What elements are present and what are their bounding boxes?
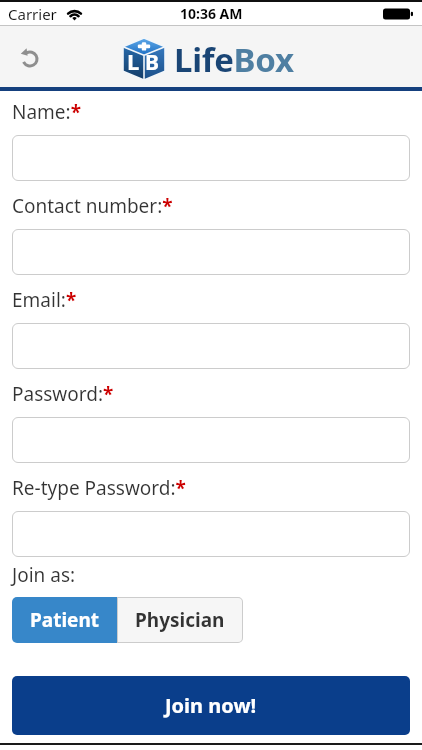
button[interactable]: Physician — [117, 597, 243, 643]
button[interactable]: Patient — [12, 597, 117, 643]
staticText: Email:* — [12, 287, 77, 313]
staticText: L — [127, 46, 140, 76]
staticText: Patient — [30, 607, 100, 633]
staticText: Join now! — [165, 692, 257, 719]
staticText: Password:* — [12, 381, 114, 407]
staticText: B — [145, 48, 159, 77]
button[interactable] — [12, 323, 410, 369]
button[interactable] — [12, 417, 410, 463]
staticText: Name:* — [12, 99, 81, 125]
staticText: Join as: — [12, 562, 76, 588]
staticText: Carrier — [8, 4, 57, 24]
staticText: Contact number:* — [12, 193, 173, 219]
staticText: 10:36 AM — [180, 4, 243, 23]
staticText: Re-type Password:* — [12, 475, 186, 501]
button[interactable] — [12, 41, 44, 73]
button[interactable] — [12, 135, 410, 181]
staticText: LifeBox — [174, 37, 294, 82]
staticText: Physician — [135, 607, 225, 633]
button[interactable]: Join now! — [12, 676, 410, 735]
button[interactable] — [12, 511, 410, 557]
button[interactable] — [12, 229, 410, 275]
